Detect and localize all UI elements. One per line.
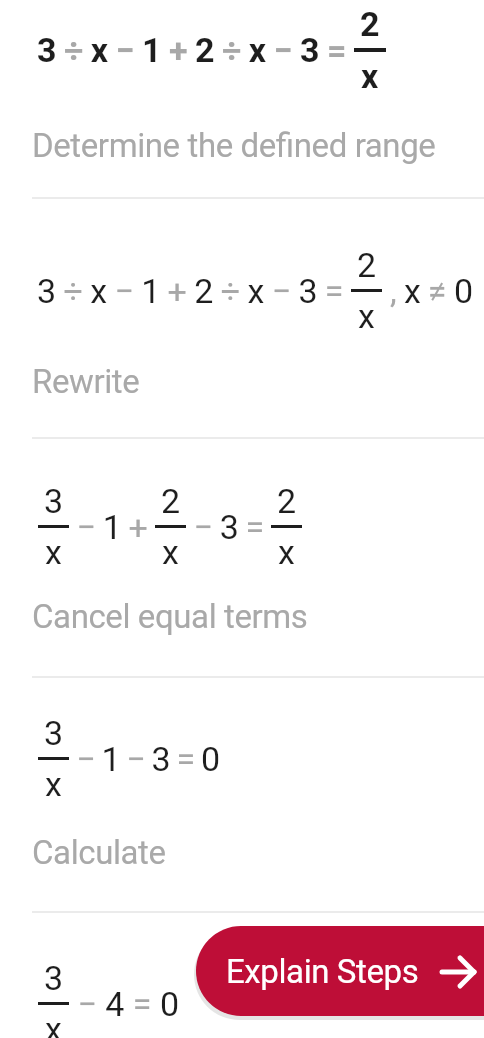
staticText: Rewrite bbox=[32, 362, 140, 401]
staticText: x bbox=[162, 532, 179, 572]
staticText: 3 ÷ x − 1 + 2 ÷ x − 3 = bbox=[37, 271, 351, 311]
staticText: Calculate bbox=[32, 833, 166, 872]
staticText: 3 bbox=[44, 713, 64, 753]
staticText: 3 bbox=[44, 481, 64, 521]
staticText: − 1 − 3 = 0 bbox=[69, 739, 219, 779]
staticText: x bbox=[278, 532, 295, 572]
staticText: x bbox=[361, 56, 379, 96]
staticText: − 4 = 0 bbox=[69, 984, 180, 1024]
staticText: x bbox=[45, 532, 62, 572]
staticText: Explain Steps bbox=[226, 952, 419, 991]
staticText: 3 bbox=[44, 958, 64, 998]
staticText: − 3 = bbox=[186, 507, 271, 547]
staticText: 3 ÷ x − 1 + 2 ÷ x − 3 = bbox=[37, 30, 354, 70]
staticText: Cancel equal terms bbox=[32, 597, 308, 636]
staticText: x bbox=[358, 296, 375, 336]
staticText: − 1 + bbox=[69, 507, 155, 547]
button[interactable]: Explain Steps bbox=[196, 926, 484, 1016]
staticText: 2 bbox=[161, 481, 181, 521]
staticText: x bbox=[45, 1009, 62, 1038]
staticText: 2 bbox=[277, 481, 297, 521]
staticText: 2 bbox=[357, 245, 377, 285]
staticText: x bbox=[45, 764, 62, 804]
staticText: Determine the defined range bbox=[32, 126, 436, 165]
staticText: , x ≠ 0 bbox=[382, 271, 473, 311]
staticText: 2 bbox=[360, 4, 380, 44]
